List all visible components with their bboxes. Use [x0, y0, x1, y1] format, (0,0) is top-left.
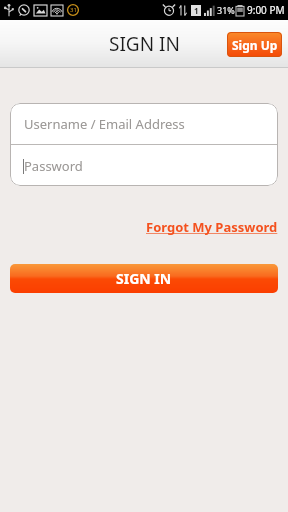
staticText: 31	[70, 6, 77, 14]
button[interactable]: Username / Email Address	[10, 103, 278, 144]
staticText: Username / Email Address	[24, 115, 185, 133]
staticText: Password	[24, 157, 83, 175]
staticText: SIGN IN	[116, 269, 172, 288]
button[interactable]: Sign Up	[227, 32, 282, 57]
staticText: Sign Up	[232, 37, 278, 53]
staticText: 31%	[217, 4, 235, 16]
button[interactable]: Forgot My Password	[146, 218, 278, 236]
staticText: SIGN IN	[109, 31, 180, 57]
staticText: Forgot My Password	[146, 218, 278, 236]
staticText: 1	[194, 5, 199, 16]
staticText: 9:00 PM	[247, 3, 285, 17]
button[interactable]: SIGN IN	[10, 264, 278, 293]
button[interactable]: Password	[10, 145, 278, 186]
